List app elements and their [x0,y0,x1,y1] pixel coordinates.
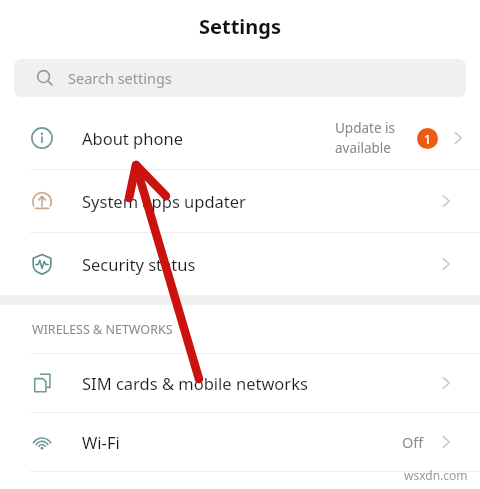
staticText: WIRELESS & NETWORKS [32,321,173,338]
staticText: System apps updater [82,190,438,212]
staticText: About phone [82,127,335,149]
button[interactable]: Security status [0,233,480,295]
staticText: Search settings [68,68,172,88]
staticText: 1 [424,131,431,147]
button[interactable]: Wi-Fi [0,413,480,471]
staticText: available [335,139,391,157]
staticText: Settings [199,13,281,40]
staticText: Update is [335,119,395,137]
staticText: wsxdn.com [404,467,468,483]
staticText: SIM cards & mobile networks [82,372,438,394]
staticText: Wi-Fi [82,431,402,453]
button[interactable]: About phone [0,107,480,169]
staticText: Security status [82,253,438,275]
button[interactable]: Search settings [14,59,466,97]
button[interactable]: SIM cards & mobile networks [0,354,480,412]
staticText: Off [402,432,424,452]
button[interactable]: System apps updater [0,170,480,232]
